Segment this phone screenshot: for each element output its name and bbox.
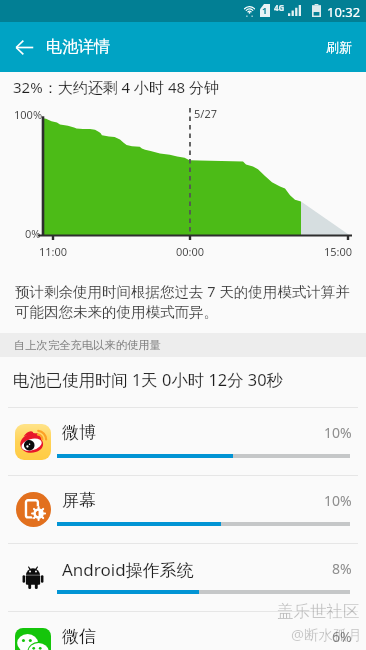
- staticText: 32%：大约还剩 4 小时 48 分钟: [13, 77, 219, 97]
- staticText: 10:32: [327, 3, 361, 21]
- staticText: 4G: [274, 2, 285, 13]
- button[interactable]: Back: [0, 23, 48, 71]
- staticText: 1: [262, 4, 268, 16]
- staticText: 屏幕: [62, 490, 96, 511]
- staticText: 微博: [62, 422, 96, 443]
- button[interactable]: 刷新: [312, 22, 366, 72]
- button[interactable]: 微博: [0, 408, 366, 475]
- staticText: 100%: [14, 107, 43, 122]
- staticText: Android操作系统: [62, 558, 194, 581]
- button[interactable]: 屏幕: [0, 476, 366, 543]
- staticText: 00:00: [176, 244, 205, 259]
- staticText: 15:00: [324, 244, 353, 259]
- staticText: 10%: [324, 491, 352, 510]
- staticText: 5/27: [194, 106, 217, 121]
- staticText: 预计剩余使用时间根据您过去 7 天的使用模式计算并 可能因您未来的使用模式而异。: [15, 281, 350, 322]
- staticText: 电池详情: [46, 37, 110, 57]
- staticText: 8%: [332, 559, 352, 578]
- staticText: 刷新: [326, 39, 352, 55]
- staticText: 11:00: [39, 244, 68, 259]
- staticText: 微信: [62, 626, 96, 647]
- staticText: 电池已使用时间 1天 0小时 12分 30秒: [13, 368, 283, 390]
- button[interactable]: Android操作系统: [0, 544, 366, 611]
- staticText: 6%: [332, 627, 352, 646]
- staticText: 自上次完全充电以来的使用量: [14, 338, 161, 352]
- button[interactable]: 微信: [0, 612, 366, 650]
- staticText: @断水孤月: [291, 624, 363, 644]
- staticText: 10%: [324, 423, 352, 442]
- staticText: 盖乐世社区: [277, 601, 360, 622]
- staticText: 0%: [25, 226, 41, 241]
